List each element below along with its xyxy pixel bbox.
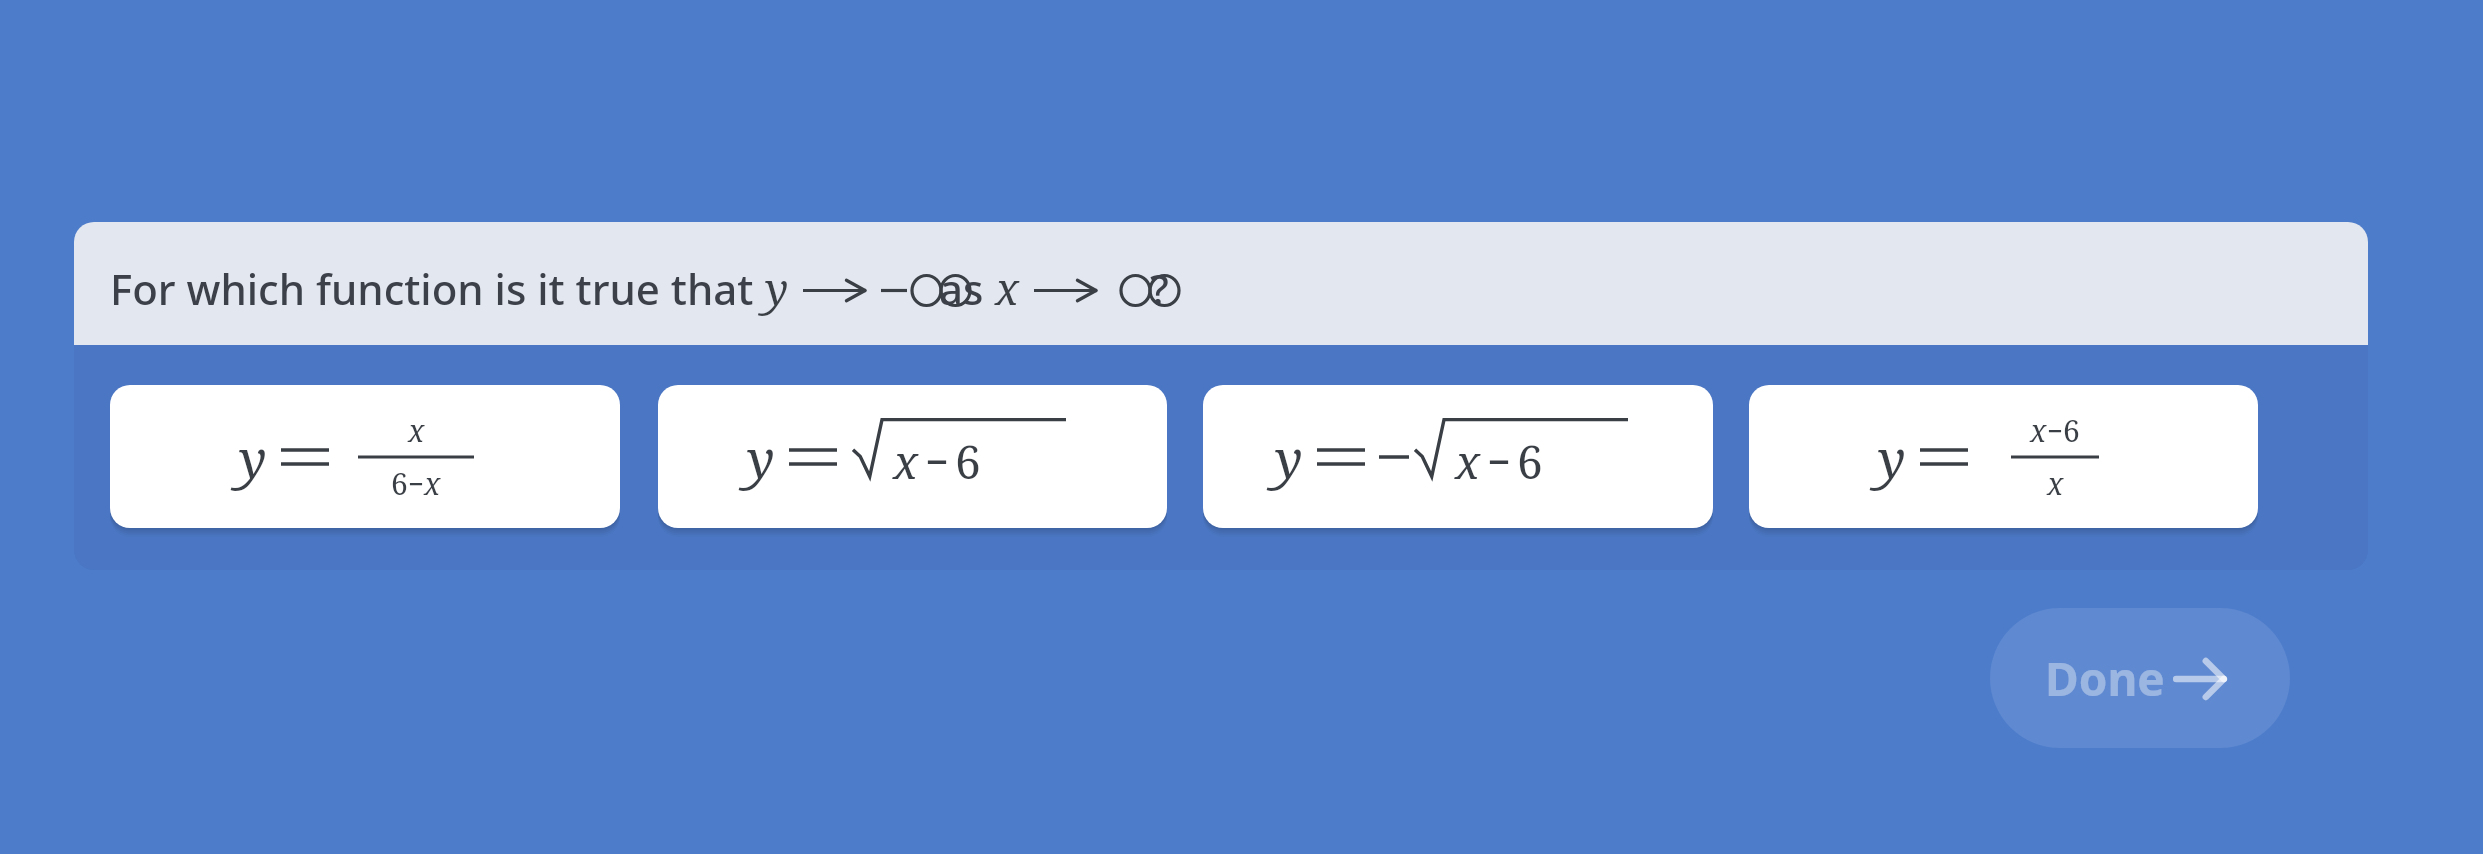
staticText: 6 [955,430,981,493]
button[interactable]: y [1749,385,2258,528]
staticText: x [2030,410,2047,451]
staticText: x [995,258,1020,318]
staticText: y [1878,422,1906,493]
staticText: x [1455,430,1481,493]
staticText: y [1275,422,1303,493]
staticText: For which function is it true that [110,260,765,317]
staticText: Done [2045,647,2165,710]
staticText: 6 [1517,430,1543,493]
other: Done [2165,649,2235,709]
button[interactable]: y [658,385,1167,528]
button[interactable]: y [110,385,620,528]
staticText: x [893,430,919,493]
staticText: as [939,260,995,317]
staticText: ? [1150,260,1169,317]
staticText: x [408,410,425,451]
button[interactable]: Done [1990,608,2290,748]
staticText: x [424,463,441,504]
staticText: x [2047,463,2064,504]
staticText: 6 [391,463,408,504]
staticText: y [239,422,267,493]
staticText: 6 [2063,410,2080,451]
staticText: y [765,258,789,318]
button[interactable]: y [1203,385,1713,528]
staticText: y [747,422,775,493]
